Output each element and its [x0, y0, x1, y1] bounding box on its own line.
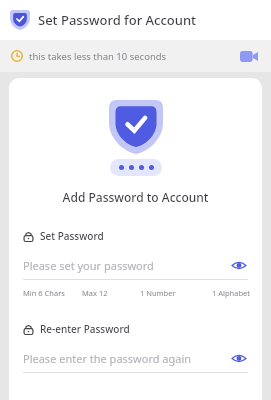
button[interactable]: Show password [230, 256, 248, 274]
staticText: Min 6 Chars [23, 288, 82, 298]
staticText: Please set your password [23, 258, 154, 273]
staticText: this takes less than 10 seconds [29, 50, 167, 63]
staticText: Please enter the password again [23, 351, 192, 366]
staticText: Set Password for Account [38, 11, 197, 29]
button[interactable]: Please set your password [23, 254, 248, 276]
staticText: 1 Number [140, 288, 198, 298]
staticText: Max 12 [82, 288, 140, 298]
staticText: Add Password to Account [17, 189, 254, 205]
button[interactable]: Watch video [238, 47, 260, 65]
staticText: 1 Alphabet [198, 288, 250, 298]
staticText: Re-enter Password [40, 322, 130, 336]
button[interactable]: Please enter the password again [23, 347, 248, 369]
staticText: Set Password [40, 229, 104, 243]
button[interactable]: Show password [230, 349, 248, 367]
